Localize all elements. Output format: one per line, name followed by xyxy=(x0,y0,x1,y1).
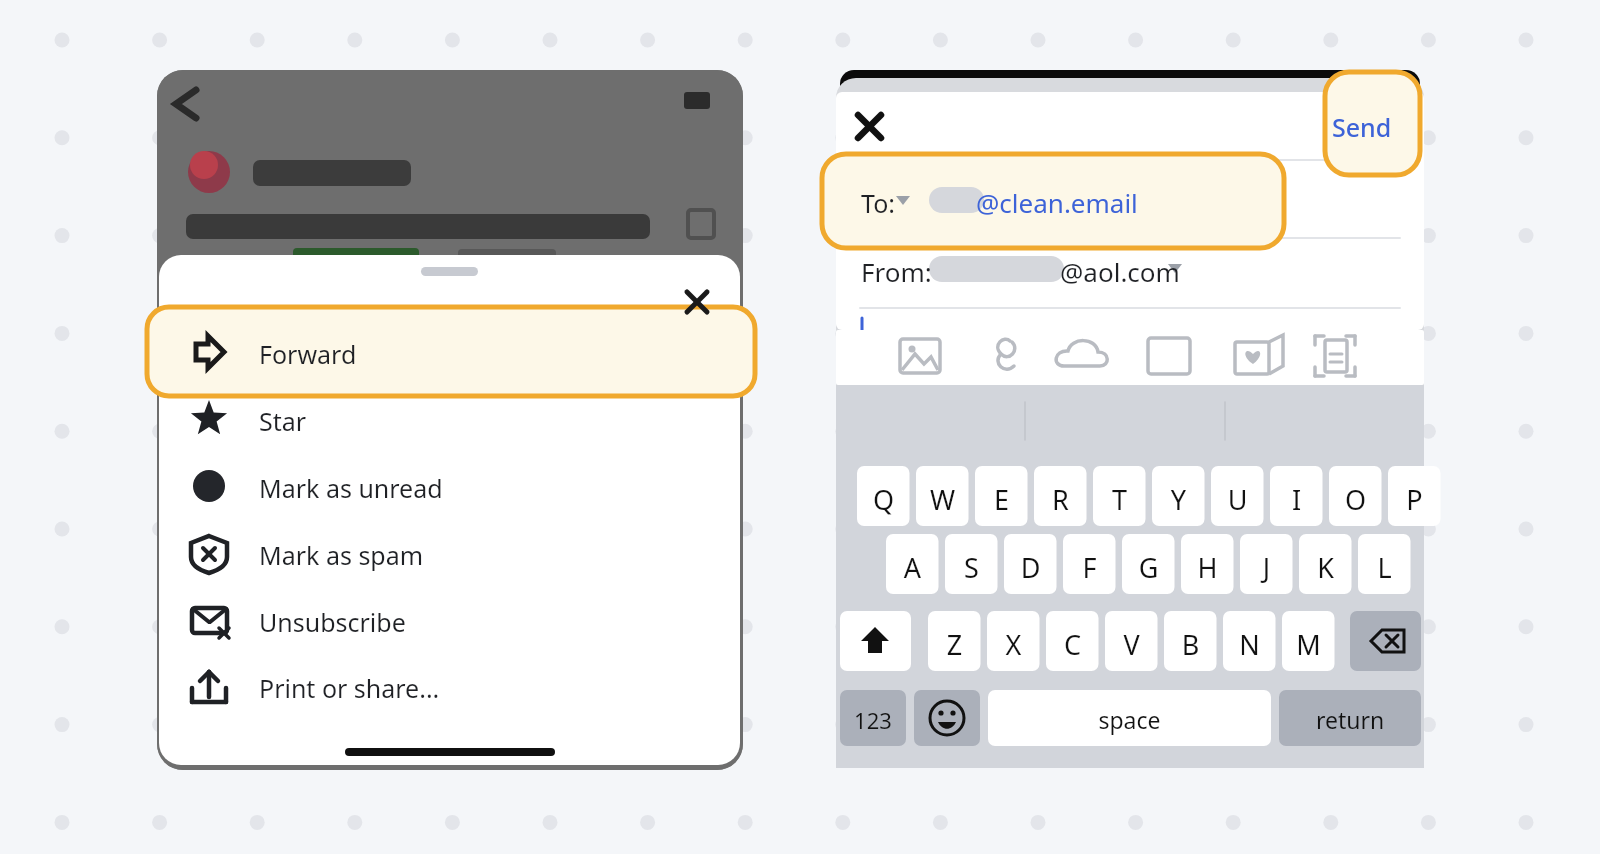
staticText: 123 xyxy=(840,705,906,747)
staticText: V xyxy=(1105,626,1158,677)
staticText: To: xyxy=(861,186,931,234)
staticText: From: xyxy=(861,254,971,303)
button[interactable] xyxy=(1325,72,1420,175)
staticText: A xyxy=(886,549,939,600)
button[interactable] xyxy=(147,307,755,396)
staticText: N xyxy=(1223,626,1276,677)
staticText: Z xyxy=(928,626,981,677)
staticText: D xyxy=(1004,549,1057,600)
staticText: T xyxy=(1093,481,1146,532)
staticText: Y xyxy=(1152,481,1205,532)
staticText: G xyxy=(1122,549,1175,600)
staticText: U xyxy=(1211,481,1264,532)
staticText: W xyxy=(916,481,969,532)
staticText: @clean.email xyxy=(976,185,1256,234)
staticText: Send xyxy=(1332,110,1424,158)
staticText: J xyxy=(1240,549,1293,600)
staticText: Print or share... xyxy=(259,671,689,719)
staticText: K xyxy=(1299,549,1352,600)
staticText: C xyxy=(1046,626,1099,677)
staticText: I xyxy=(1270,481,1323,532)
staticText: Forward xyxy=(259,337,689,385)
staticText: Star xyxy=(259,404,689,452)
staticText: F xyxy=(1063,549,1116,600)
staticText: B xyxy=(1164,626,1217,677)
staticText: S xyxy=(945,549,998,600)
button[interactable] xyxy=(160,396,740,456)
staticText: return xyxy=(1279,704,1421,748)
staticText: Unsubscribe xyxy=(259,605,689,653)
staticText: Q xyxy=(857,481,910,532)
staticText: space xyxy=(988,704,1271,748)
staticText: Mark as unread xyxy=(259,471,689,519)
staticText: O xyxy=(1329,481,1382,532)
button[interactable]: Close menu xyxy=(672,280,722,326)
staticText: X xyxy=(987,626,1040,677)
button[interactable] xyxy=(160,657,740,717)
staticText: R xyxy=(1034,481,1087,532)
button[interactable] xyxy=(160,457,740,517)
staticText: M xyxy=(1282,626,1335,677)
staticText: Mark as spam xyxy=(259,538,689,586)
staticText: H xyxy=(1181,549,1234,600)
button[interactable]: Close compose xyxy=(846,104,898,152)
staticText: P xyxy=(1388,481,1441,532)
staticText: L xyxy=(1358,549,1411,600)
staticText: E xyxy=(975,481,1028,532)
button[interactable] xyxy=(160,591,740,651)
staticText: @aol.com xyxy=(1060,254,1240,303)
button[interactable] xyxy=(160,524,740,584)
